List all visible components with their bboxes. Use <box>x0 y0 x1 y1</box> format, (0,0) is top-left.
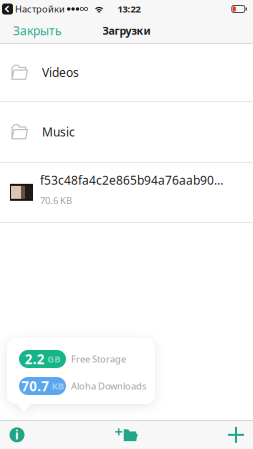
staticText: Aloha Downloads <box>71 380 146 392</box>
button[interactable]: Info <box>0 421 34 449</box>
button[interactable]: Videos <box>0 44 253 102</box>
staticText: KB <box>52 380 64 392</box>
button[interactable]: New Folder <box>109 421 143 449</box>
button[interactable]: Music <box>0 102 253 163</box>
staticText: i <box>15 427 19 443</box>
staticText: 13:22 <box>117 3 140 15</box>
staticText: 70.6 KB <box>40 194 72 206</box>
button[interactable]: Закрыть <box>0 18 71 43</box>
staticText: Настройки <box>15 3 65 15</box>
staticText: Загрузки <box>102 23 150 38</box>
staticText: 70.7 <box>21 377 49 395</box>
staticText: GB <box>47 353 60 365</box>
staticText: Закрыть <box>13 22 62 38</box>
button[interactable]: f53c48fa4c2e865b94a76aab90… <box>0 163 253 223</box>
staticText: f53c48fa4c2e865b94a76aab90… <box>40 172 223 188</box>
staticText: 2.2 <box>25 350 45 368</box>
staticText: Music <box>42 124 75 140</box>
staticText: Free Storage <box>71 353 126 365</box>
staticText: Videos <box>42 64 79 80</box>
button[interactable]: Add <box>219 421 253 449</box>
